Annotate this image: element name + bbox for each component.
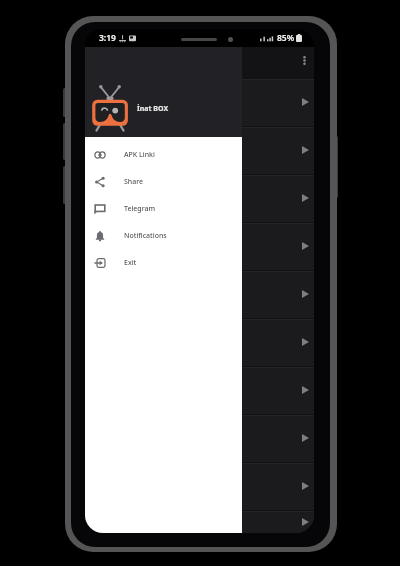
staticText: Telegram (124, 204, 156, 214)
staticText: Notifications (124, 231, 167, 241)
button[interactable] (85, 414, 314, 462)
button[interactable]: Notifications (85, 222, 242, 249)
button[interactable] (85, 126, 314, 174)
staticText: Share (124, 177, 144, 187)
button[interactable]: Exit (85, 249, 242, 276)
button[interactable] (85, 510, 314, 533)
button[interactable] (85, 462, 314, 510)
button[interactable] (85, 366, 314, 414)
button[interactable] (85, 270, 314, 318)
button[interactable] (85, 78, 314, 126)
staticText: 3:19 (99, 32, 116, 44)
button[interactable] (85, 318, 314, 366)
button[interactable]: Telegram (85, 195, 242, 222)
button[interactable]: More options (296, 52, 312, 68)
staticText: APK Linki (124, 150, 155, 160)
staticText: Exit (124, 258, 137, 268)
button[interactable]: APK Linki (85, 141, 242, 168)
button[interactable]: Share (85, 168, 242, 195)
staticText: İnat BOX (137, 104, 169, 114)
button[interactable] (85, 222, 314, 270)
button[interactable] (85, 174, 314, 222)
staticText: 85% (277, 32, 295, 44)
